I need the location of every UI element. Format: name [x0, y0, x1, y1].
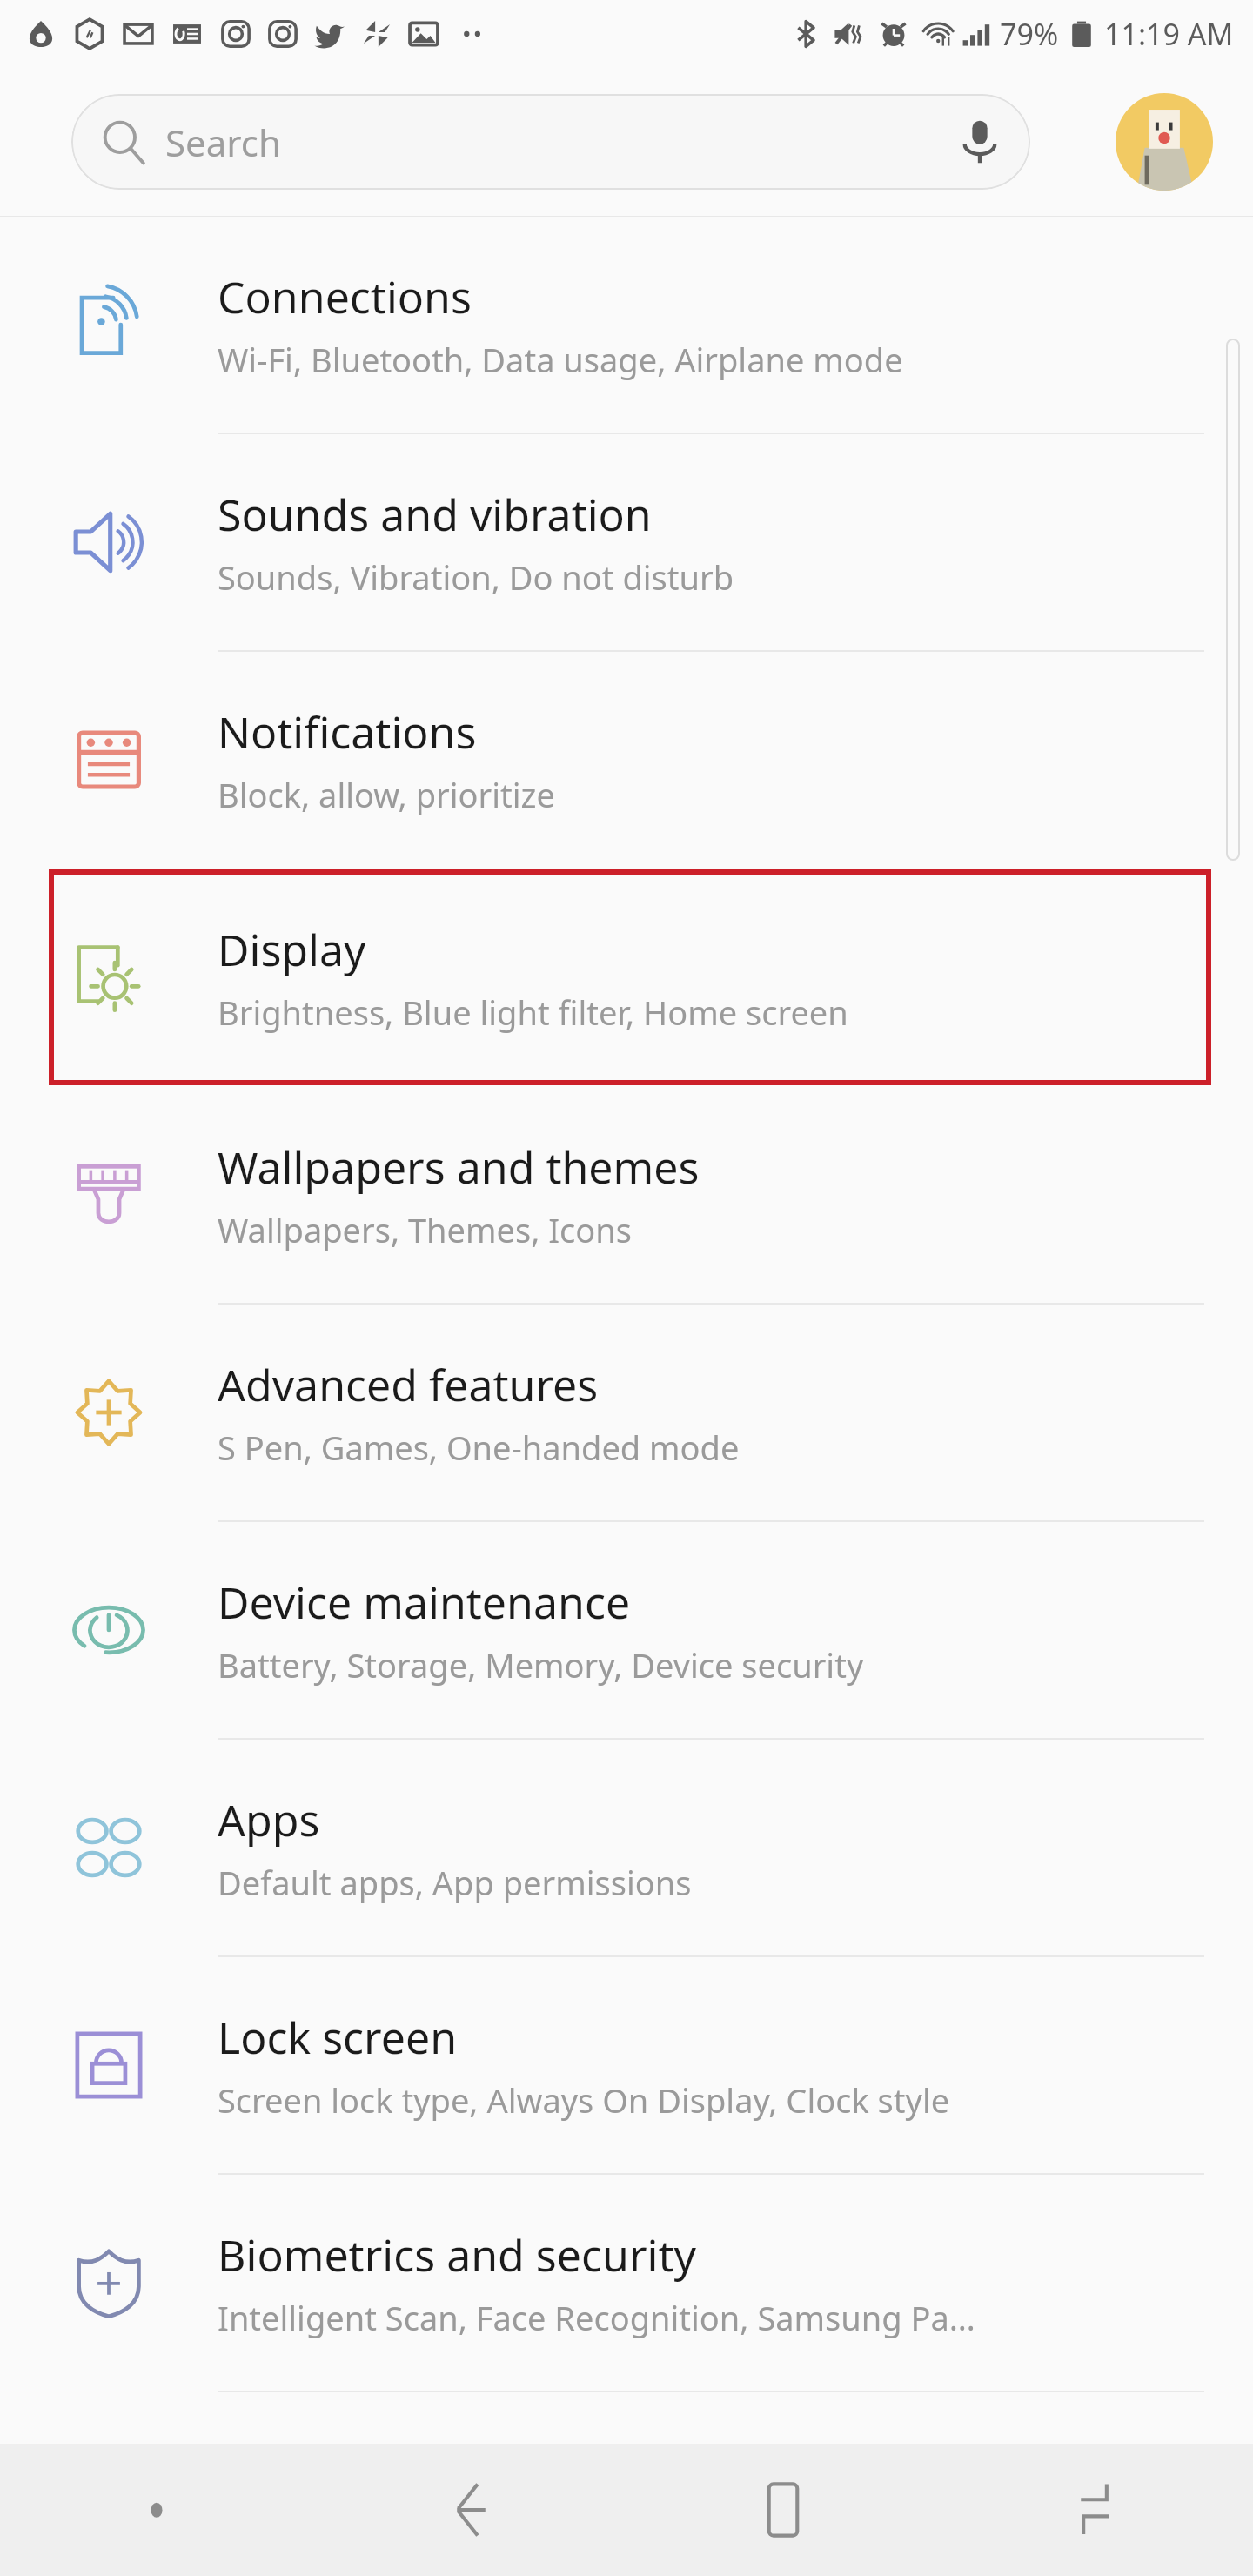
button[interactable]: Account	[1116, 93, 1213, 191]
staticText: Wallpapers, Themes, Icons	[218, 1207, 633, 1252]
button[interactable]: Search	[71, 94, 1030, 190]
button[interactable]: Connections	[0, 217, 1253, 433]
staticText: Wi-Fi, Bluetooth, Data usage, Airplane m…	[218, 337, 903, 382]
button[interactable]: Device maintenance	[0, 1522, 1253, 1738]
button[interactable]: Lock screen	[0, 1957, 1253, 2173]
staticText: Apps	[218, 1790, 320, 1849]
button[interactable]: Voice search	[938, 100, 1022, 184]
staticText: Advanced features	[218, 1355, 599, 1414]
button[interactable]: Recents	[940, 2444, 1253, 2576]
button[interactable]: Sounds and vibration	[0, 434, 1253, 650]
staticText: Brightness, Blue light filter, Home scre…	[218, 989, 848, 1035]
staticText: Connections	[218, 267, 472, 326]
button[interactable]: Back	[313, 2444, 626, 2576]
button[interactable]: Home	[626, 2444, 940, 2576]
staticText: Wallpapers and themes	[218, 1137, 700, 1197]
staticText: Sounds and vibration	[218, 485, 652, 544]
staticText: S Pen, Games, One-handed mode	[218, 1425, 740, 1470]
button[interactable]: Wallpapers and themes	[0, 1087, 1253, 1303]
staticText: Block, allow, prioritize	[218, 772, 555, 817]
staticText: 11:19 AM	[1104, 14, 1234, 54]
button[interactable]: Biometrics and security	[0, 2175, 1253, 2391]
button[interactable]: Notifications	[0, 652, 1253, 868]
staticText: Screen lock type, Always On Display, Clo…	[218, 2077, 950, 2123]
staticText: Intelligent Scan, Face Recognition, Sams…	[218, 2295, 975, 2340]
staticText: Default apps, App permissions	[218, 1860, 692, 1905]
staticText: Search	[165, 117, 281, 167]
staticText: Biometrics and security	[218, 2225, 696, 2284]
staticText: Lock screen	[218, 2008, 458, 2067]
button[interactable]: Display	[0, 869, 1253, 1085]
button[interactable]: Advanced features	[0, 1305, 1253, 1520]
staticText: 79%	[1000, 14, 1059, 54]
button[interactable]: Apps	[0, 1740, 1253, 1955]
staticText: Notifications	[218, 702, 477, 761]
staticText: Sounds, Vibration, Do not disturb	[218, 554, 734, 600]
staticText: Device maintenance	[218, 1573, 631, 1632]
staticText: Display	[218, 920, 366, 979]
staticText: Battery, Storage, Memory, Device securit…	[218, 1642, 864, 1687]
button[interactable]: Keyboard indicator	[0, 2444, 313, 2576]
